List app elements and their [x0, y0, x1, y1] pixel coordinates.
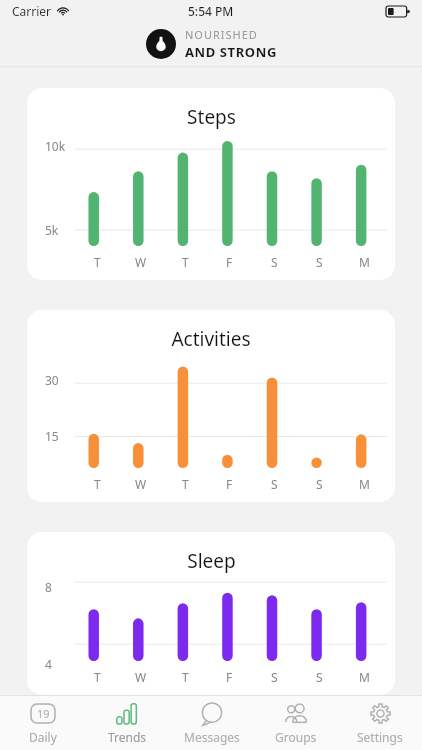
staticText: S [316, 254, 323, 270]
staticText: S [271, 669, 278, 685]
staticText: T [94, 476, 101, 492]
staticText: T [182, 476, 189, 492]
staticText: Daily [29, 729, 57, 745]
staticText: S [271, 254, 278, 270]
staticText: Settings [357, 729, 403, 745]
button[interactable]: Trends [85, 697, 170, 750]
staticText: S [316, 669, 323, 685]
staticText: 4 [45, 656, 52, 672]
staticText: 5k [45, 222, 59, 238]
staticText: W [135, 254, 147, 270]
other: Trends [115, 703, 141, 724]
other: Settings [370, 703, 391, 724]
other: Daily [30, 703, 56, 724]
button[interactable]: Groups [254, 697, 338, 750]
staticText: 30 [45, 372, 59, 388]
staticText: NOURISHED [185, 27, 258, 42]
staticText: Trends [108, 729, 147, 745]
staticText: Groups [275, 729, 317, 745]
staticText: W [135, 669, 147, 685]
button[interactable]: Settings [338, 697, 422, 750]
staticText: T [182, 669, 189, 685]
staticText: F [226, 476, 233, 492]
button[interactable]: Activities [27, 310, 395, 502]
staticText: S [316, 476, 323, 492]
staticText: Carrier [12, 3, 52, 19]
staticText: M [359, 254, 370, 270]
staticText: F [226, 254, 233, 270]
staticText: F [226, 669, 233, 685]
staticText: Messages [184, 729, 240, 745]
staticText: T [182, 254, 189, 270]
other: Groups [282, 703, 310, 724]
staticText: 5:54 PM [188, 3, 234, 19]
staticText: 15 [45, 428, 59, 444]
staticText: 10k [45, 138, 66, 154]
staticText: Sleep [187, 548, 236, 574]
staticText: Activities [171, 326, 251, 352]
staticText: M [359, 669, 370, 685]
staticText: 19 [37, 706, 50, 721]
button[interactable]: Sleep [27, 532, 395, 695]
staticText: M [359, 476, 370, 492]
other: Messages [199, 703, 225, 724]
staticText: AND STRONG [185, 43, 277, 61]
button[interactable]: Steps [27, 88, 395, 280]
button[interactable]: Daily [0, 697, 85, 750]
staticText: W [135, 476, 147, 492]
button[interactable]: Messages [170, 697, 254, 750]
staticText: T [94, 669, 101, 685]
staticText: Steps [187, 104, 236, 130]
staticText: 8 [45, 579, 52, 595]
staticText: S [271, 476, 278, 492]
staticText: T [94, 254, 101, 270]
